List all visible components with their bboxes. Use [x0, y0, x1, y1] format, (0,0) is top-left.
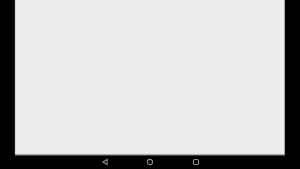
button[interactable]: Recents [187, 155, 205, 169]
button[interactable] [15, 0, 285, 154]
button[interactable]: Home [141, 155, 159, 169]
button[interactable]: Back [96, 155, 114, 169]
